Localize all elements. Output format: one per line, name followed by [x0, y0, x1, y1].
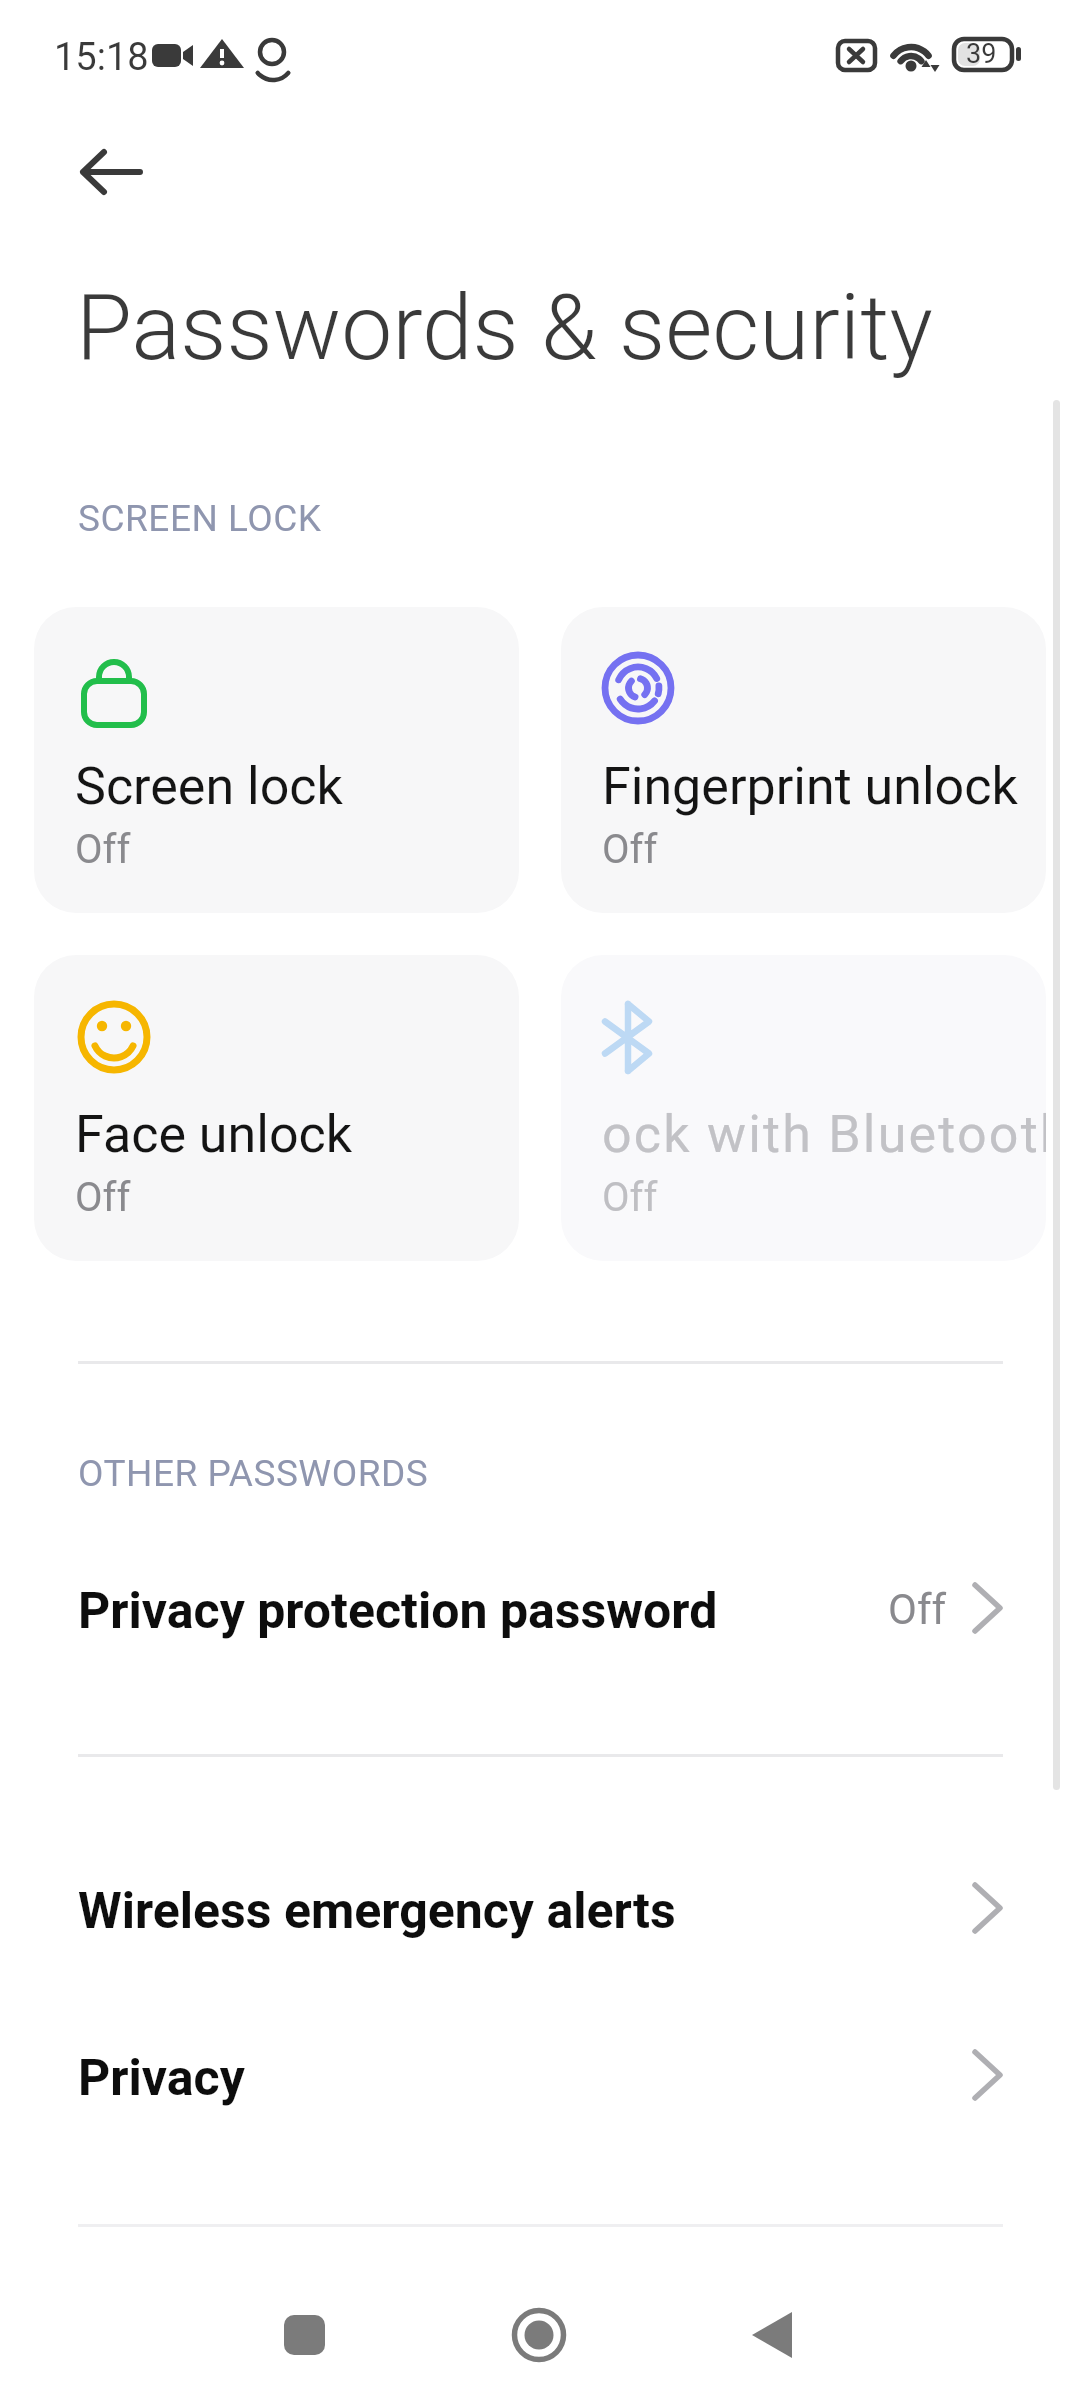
button[interactable]	[499, 2295, 579, 2375]
button[interactable]: ock with Bluetooth de	[561, 955, 1046, 1261]
staticText: 39	[966, 38, 997, 70]
staticText: 15:18	[54, 35, 149, 80]
staticText: Off	[888, 1585, 947, 1634]
staticText: Privacy	[78, 2049, 245, 2108]
button[interactable]	[264, 2295, 344, 2375]
button[interactable]: Fingerprint unlock	[561, 607, 1046, 913]
staticText: Face unlock	[75, 1104, 353, 1165]
staticText: OTHER PASSWORDS	[78, 1452, 429, 1495]
staticText: Off	[602, 1174, 658, 1221]
staticText: Privacy protection password	[78, 1582, 718, 1641]
button[interactable]: Privacy	[48, 2019, 1033, 2131]
button[interactable]: Privacy protection password	[48, 1552, 1033, 1664]
staticText: SCREEN LOCK	[78, 497, 322, 540]
button[interactable]: Screen lock	[34, 607, 519, 913]
button[interactable]	[732, 2295, 812, 2375]
button[interactable]	[60, 135, 160, 210]
staticText: Wireless emergency alerts	[78, 1882, 676, 1941]
staticText: Screen lock	[75, 756, 343, 817]
button[interactable]: Face unlock	[34, 955, 519, 1261]
staticText: Off	[602, 826, 658, 873]
staticText: Off	[75, 826, 131, 873]
staticText: ock with Bluetooth de	[602, 1104, 1046, 1165]
button[interactable]: Wireless emergency alerts	[48, 1852, 1033, 1964]
staticText: Off	[75, 1174, 131, 1221]
staticText: Fingerprint unlock	[602, 756, 1018, 817]
staticText: Passwords & security	[76, 275, 933, 382]
